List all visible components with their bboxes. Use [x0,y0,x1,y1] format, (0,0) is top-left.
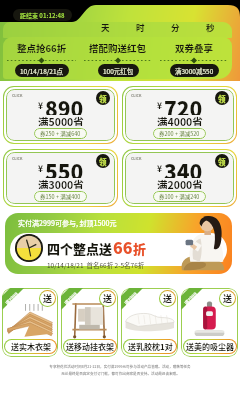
staticText: 送乳胶枕1对 [128,341,173,353]
staticText: 送实木衣架 [11,341,51,353]
staticText: 890 [45,93,84,115]
staticText: ¥ [38,162,44,174]
button[interactable]: 整点抢66折 [3,37,80,79]
staticText: 专享积花优活动时间8月21-22日，实付满2999元可参与活动产品皆赠。活动，赠… [49,364,191,369]
staticText: CLICK [12,156,23,161]
staticText: 100元红包 [103,66,134,75]
staticText: CLICK [131,93,142,98]
button[interactable]: 距结束 01:12:48 [13,9,72,21]
staticText: 券100 + 满减240 [159,193,200,201]
staticText: 满2999 [4,290,20,307]
button[interactable]: ¥ [122,86,237,144]
staticText: ¥ [157,99,163,111]
button[interactable]: 搭配购送红包 [80,37,156,79]
staticText: 送 [43,292,53,305]
button[interactable]: 满2999 [2,288,58,357]
staticText: 送移动挂衣架 [66,341,114,353]
staticText: 天 [101,21,110,33]
staticText: 送 [163,292,173,305]
staticText: 720 [164,93,203,115]
button[interactable]: 双券叠享 [156,37,232,79]
staticText: 券150 + 满减400 [40,193,81,201]
staticText: 送美的吸尘器 [186,341,234,353]
staticText: 时 [136,21,145,33]
button[interactable]: 满2999 [181,288,238,357]
button[interactable]: 满2999 [61,288,118,357]
staticText: 满3000省 [38,177,84,189]
staticText: 折 [133,239,147,258]
staticText: 领 [218,93,226,104]
staticText: 送 [103,292,113,305]
staticText: 分 [171,21,180,33]
staticText: 满2999 [63,290,79,307]
staticText: 领 [218,156,226,167]
staticText: 无论最终是否高定支付订门框，都可作出商家是否支持。活动最迟谈末赠。 [61,371,180,376]
staticText: 550 [45,156,84,178]
staticText: 340 [164,156,203,178]
staticText: 10/14/18/21 首名66折 2-5名76折 [47,260,145,269]
staticText: 满2999 [123,290,139,307]
staticText: 66 [113,235,133,258]
staticText: 满4000省 [157,114,203,126]
staticText: 满2999 [183,290,199,307]
staticText: 双券叠享 [175,41,214,55]
staticText: ¥ [157,162,163,174]
staticText: 满3000减550 [175,66,214,75]
staticText: 满5000省 [38,114,84,126]
staticText: 满2000省 [157,177,203,189]
staticText: ¥ [38,99,44,111]
staticText: 秒 [206,21,215,33]
staticText: 距结束 01:12:48 [20,11,65,20]
button[interactable]: 实付满2999可参与, 封顶1500元 [5,213,232,274]
staticText: 整点抢66折 [17,41,67,55]
staticText: 领 [99,93,107,104]
staticText: 四个整点送 [47,239,113,258]
button[interactable]: 满2999 [121,288,178,357]
button[interactable]: ¥ [3,86,118,144]
button[interactable]: ¥ [3,149,118,207]
staticText: 券250 + 满减640 [40,130,81,138]
staticText: 领 [99,156,107,167]
staticText: 搭配购送红包 [89,41,147,55]
staticText: CLICK [131,156,142,161]
staticText: CLICK [12,93,23,98]
staticText: 10/14/18/21点 [20,66,64,75]
staticText: 实付满2999可参与, 封顶1500元 [18,218,117,228]
staticText: 券200 + 满减520 [159,130,200,138]
button[interactable]: ¥ [122,149,237,207]
staticText: 送 [223,292,233,305]
